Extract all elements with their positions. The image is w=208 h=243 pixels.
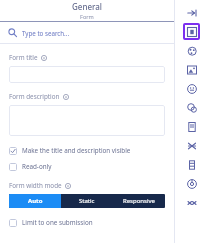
staticText: Responsive [123, 197, 155, 205]
button[interactable]: Type to search... [0, 22, 174, 43]
button[interactable]: Info: Form width mode [65, 183, 71, 189]
button[interactable]: Responsive [113, 194, 165, 208]
staticText: Auto [28, 197, 43, 205]
button[interactable]: Settings [183, 175, 200, 192]
button[interactable]: Static [61, 194, 113, 208]
staticText: Limit to one submission [22, 218, 93, 227]
staticText: General [72, 1, 102, 12]
staticText: Form [80, 13, 94, 21]
button[interactable]: Info: Form description [63, 94, 69, 100]
button[interactable]: Integrations [183, 194, 200, 211]
button[interactable]: Auto [9, 194, 61, 208]
button[interactable]: Comments [183, 99, 200, 116]
button[interactable]: Info: Form title [41, 55, 47, 61]
staticText: Form title [9, 53, 38, 62]
button[interactable]: Read-only [9, 162, 165, 171]
button[interactable]: Collapse panel [183, 4, 200, 21]
staticText: Form width mode [9, 181, 62, 190]
button[interactable]: Make the title and description visible [9, 146, 165, 155]
button[interactable]: Data [183, 156, 200, 173]
button[interactable]: Limit to one submission [9, 218, 165, 227]
button[interactable]: Emoji [183, 80, 200, 97]
button[interactable]: Form settings [183, 23, 200, 40]
button[interactable]: Pages [183, 118, 200, 135]
button[interactable]: Theme [183, 42, 200, 59]
button[interactable]: Logic [183, 137, 200, 154]
button[interactable]: Image [183, 61, 200, 78]
staticText: Read-only [22, 162, 52, 171]
button[interactable] [9, 105, 165, 136]
button[interactable] [9, 66, 165, 83]
staticText: Static [79, 197, 95, 205]
staticText: Type to search... [22, 29, 70, 37]
staticText: Make the title and description visible [22, 146, 131, 155]
staticText: Form description [9, 92, 60, 101]
